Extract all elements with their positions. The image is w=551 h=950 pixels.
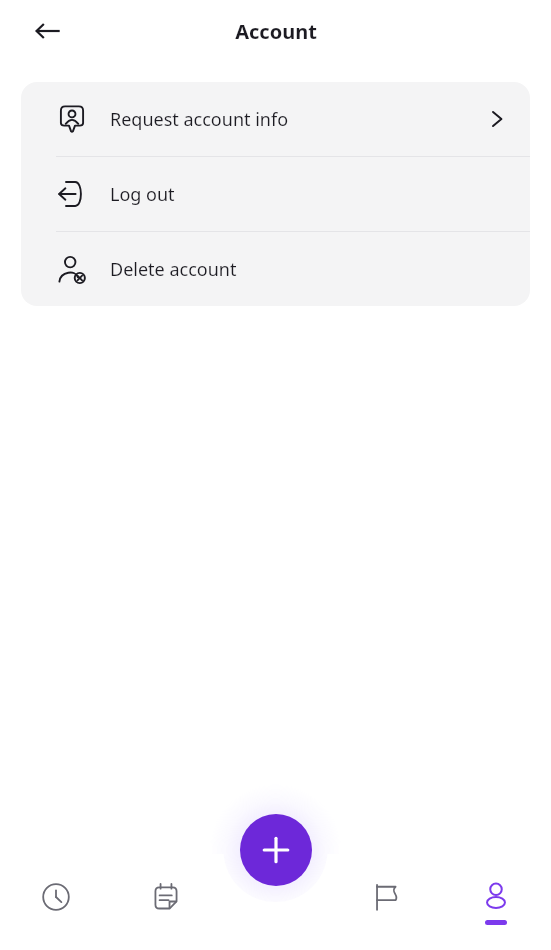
button[interactable]: Delete account — [21, 232, 530, 306]
staticText: Account — [235, 18, 317, 45]
staticText: Delete account — [110, 257, 237, 282]
button[interactable]: Goals — [331, 854, 441, 950]
staticText: Log out — [110, 182, 175, 207]
button[interactable]: Back — [24, 7, 72, 55]
button[interactable]: Profile — [441, 854, 551, 950]
button[interactable]: Log out — [21, 157, 530, 231]
staticText: Request account info — [110, 107, 289, 132]
button[interactable]: Request account info — [21, 82, 530, 156]
button[interactable]: Add — [240, 814, 312, 886]
button[interactable]: Notes — [111, 854, 221, 950]
button[interactable]: History — [0, 854, 111, 950]
